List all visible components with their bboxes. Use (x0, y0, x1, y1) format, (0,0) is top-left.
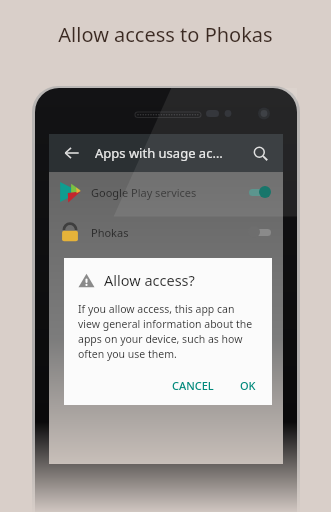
staticText: CANCEL (172, 378, 214, 393)
button[interactable]: Back (59, 140, 85, 166)
staticText: Allow access? (104, 270, 195, 290)
staticText: Phokas (91, 225, 129, 240)
button[interactable]: Toggle on (247, 184, 273, 200)
button[interactable]: OK (234, 374, 262, 397)
staticText: OK (240, 378, 256, 393)
staticText: Google Play services (91, 185, 197, 200)
button[interactable]: Toggle off (247, 224, 273, 240)
button[interactable]: Google Play services (49, 172, 283, 212)
button[interactable]: CANCEL (166, 374, 220, 397)
button[interactable]: Search (247, 140, 273, 166)
staticText: Apps with usage ac… (95, 144, 223, 162)
staticText: If you allow access, this app can view g… (78, 302, 254, 361)
button[interactable]: Phokas (49, 212, 283, 252)
staticText: Allow access to Phokas (58, 21, 273, 48)
